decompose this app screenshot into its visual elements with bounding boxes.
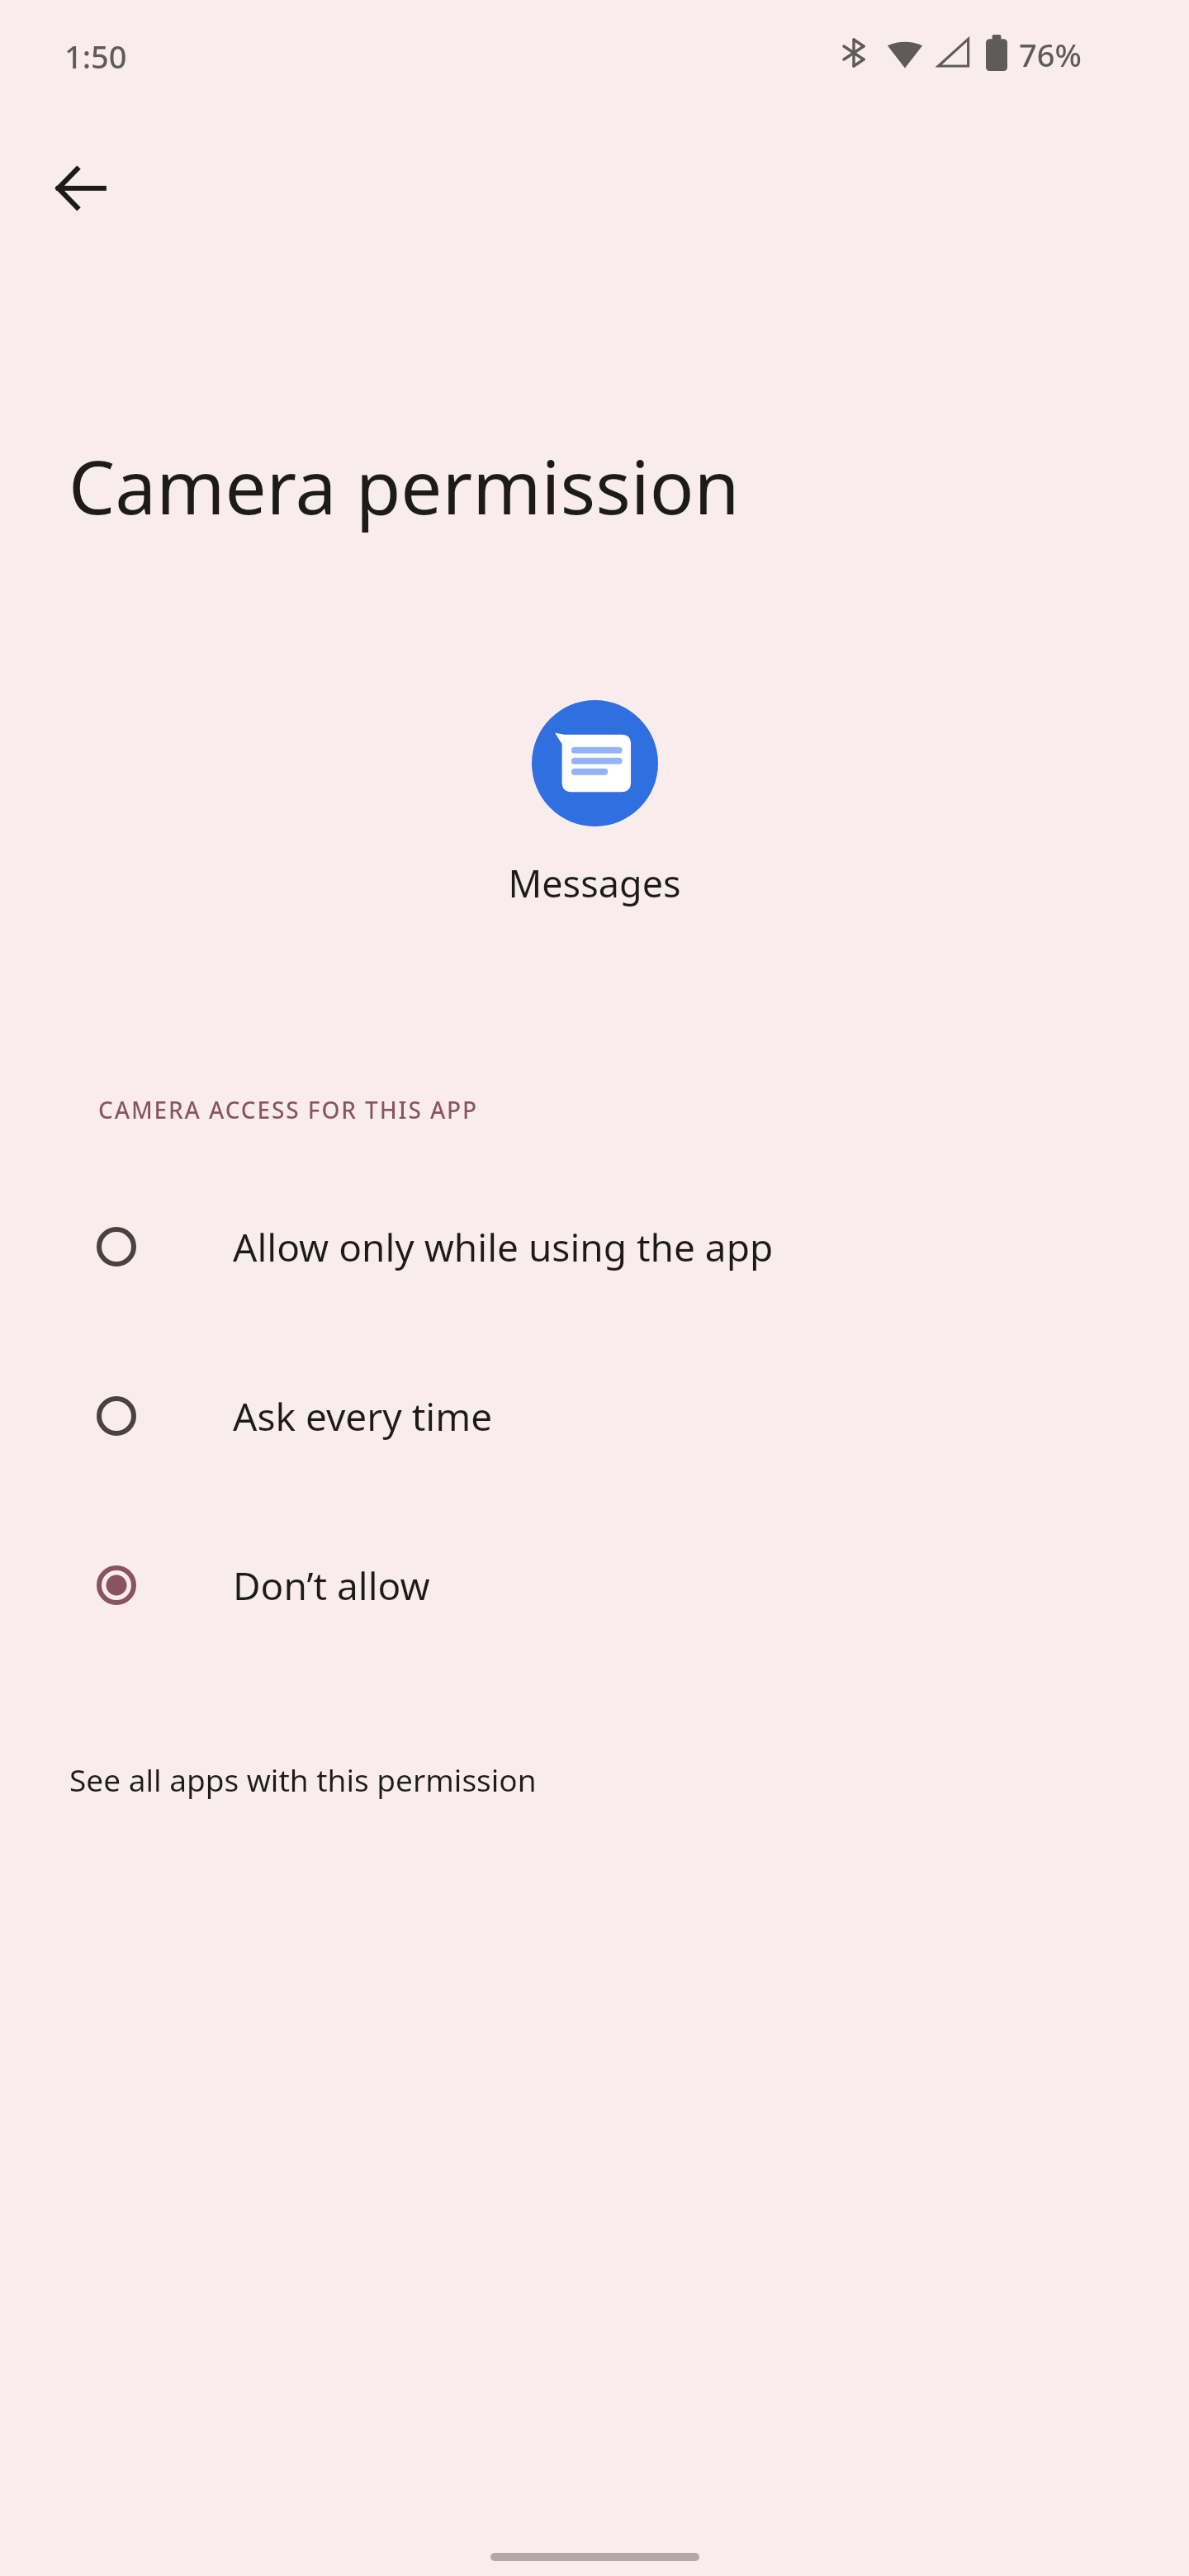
staticText: Camera permission	[69, 436, 740, 536]
button[interactable]: Back	[28, 135, 134, 241]
staticText: Allow only while using the app	[233, 1221, 774, 1273]
staticText: Don’t allow	[233, 1560, 430, 1612]
button[interactable]: Don’t allow	[0, 1513, 1189, 1658]
staticText: 76%	[1019, 33, 1082, 73]
staticText: Messages	[508, 858, 681, 908]
staticText: Ask every time	[233, 1390, 493, 1442]
staticText: CAMERA ACCESS FOR THIS APP	[98, 1094, 479, 1125]
button[interactable]: See all apps with this permission	[0, 1734, 1189, 1825]
staticText: 1:50	[64, 35, 127, 78]
button[interactable]: Allow only while using the app	[0, 1174, 1189, 1319]
button[interactable]: Ask every time	[0, 1343, 1189, 1489]
staticText: See all apps with this permission	[69, 1759, 537, 1800]
